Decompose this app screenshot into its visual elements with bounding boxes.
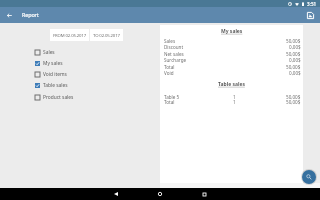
staticText: 50,00$ [286,94,301,100]
button[interactable]: Back [0,8,18,22]
staticText: FROM 02.05.2017 [53,32,86,38]
button[interactable]: Home [153,188,167,200]
button[interactable]: Void items [34,69,144,80]
staticText: Discount [164,44,226,50]
staticText: Void items [43,71,67,78]
staticText: 50,00$ [286,38,301,44]
button[interactable]: Recent apps [197,188,211,200]
button[interactable]: TO 02.05.2017 [90,29,123,41]
button[interactable]: Table sales [34,80,144,91]
staticText: Table sales [43,82,68,89]
button[interactable]: My sales [34,58,144,69]
staticText: Void [164,70,226,76]
staticText: 0,00$ [289,70,301,76]
staticText: My sales [221,28,243,35]
staticText: Sales [164,38,226,44]
staticText: Table sales [218,81,245,88]
button[interactable]: Search [302,170,316,184]
staticText: 0,00$ [289,57,301,63]
button[interactable]: Export report [304,9,317,22]
button[interactable]: Product sales [34,92,144,103]
staticText: 3:51 [307,1,317,7]
staticText: Total [164,64,226,70]
staticText: Net sales [164,51,226,57]
staticText: Total [164,99,226,105]
staticText: 50,00$ [286,99,301,105]
staticText: Surcharge [164,57,226,63]
staticText: Table 5 [164,94,226,100]
staticText: 1 [233,94,236,100]
staticText: 50,00$ [286,64,301,70]
staticText: TO 02.05.2017 [93,32,120,38]
button[interactable]: FROM 02.05.2017 [50,29,89,41]
staticText: Product sales [43,94,74,101]
staticText: 1 [233,99,236,105]
button[interactable]: Sales [34,47,144,58]
staticText: 50,00$ [286,51,301,57]
staticText: Report [22,11,39,18]
staticText: 0,00$ [289,44,301,50]
staticText: My sales [43,60,63,67]
staticText: Sales [43,49,55,56]
button[interactable]: Back [109,188,123,200]
